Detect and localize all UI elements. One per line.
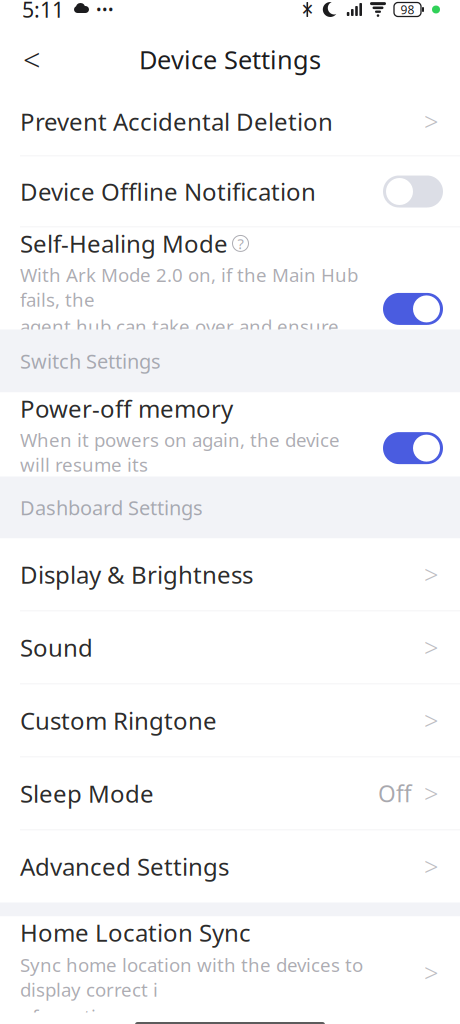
button[interactable]: Home Location Sync [0,916,460,1004]
staticText: automations and scenes executions. [20,365,341,390]
button[interactable]: Device Offline Notification [0,156,460,226]
button[interactable]: Display & Brightness [0,538,460,610]
staticText: Dashboard Settings [20,494,203,521]
button[interactable]: Self-Healing Mode [0,227,460,329]
staticText: Self-Healing Mode [20,227,228,259]
button[interactable]: Back [9,36,55,82]
staticText: Switch Settings [20,348,161,374]
staticText: 98 [400,1,414,17]
staticText: nformation [20,1004,119,1024]
staticText: When it powers on again, the device will… [20,427,340,477]
staticText: Advanced Settings [20,851,229,882]
staticText: Home Location Sync [20,916,251,948]
staticText: Sound [20,632,93,663]
staticText: > [424,850,438,883]
staticText: last state before it powers off. [20,479,282,504]
staticText: Device Settings [139,43,321,76]
button[interactable]: Prevent Accidental Deletion [0,87,460,155]
staticText: 5:11 [22,0,64,24]
staticText: agent hub can take over and ensure parti… [20,314,339,364]
staticText: > [424,704,438,737]
staticText: > [424,558,438,591]
button[interactable]: Power-off memory [0,392,460,476]
button[interactable]: Sleep Mode [0,757,460,829]
staticText: ✕ [301,0,314,19]
staticText: With Ark Mode 2.0 on, if the Main Hub fa… [20,262,358,312]
button[interactable]: Custom Ringtone [0,684,460,756]
button[interactable]: Sound [0,611,460,683]
staticText: Sync home location with the devices to d… [20,952,363,1002]
staticText: > [424,956,438,989]
staticText: Custom Ringtone [20,705,217,736]
staticText: Sleep Mode [20,778,154,809]
staticText: Device Offline Notification [20,176,316,207]
staticText: Off [378,778,412,808]
staticText: > [424,631,438,664]
staticText: Prevent Accidental Deletion [20,106,333,137]
staticText: ? [237,234,243,253]
button[interactable]: Advanced Settings [0,830,460,902]
staticText: < [23,39,41,80]
staticText: Display & Brightness [20,559,253,590]
staticText: > [424,777,438,810]
staticText: > [424,105,438,138]
staticText: Power-off memory [20,392,233,424]
staticText: ••• [96,0,114,19]
